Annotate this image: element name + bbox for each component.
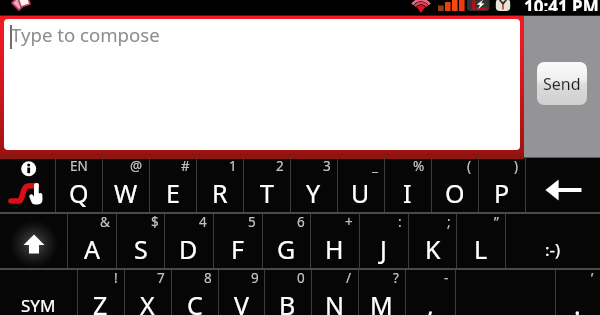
staticText: !	[114, 269, 118, 287]
staticText: B	[279, 288, 296, 315]
staticText: V	[234, 288, 250, 315]
button[interactable]: Backspace	[525, 157, 600, 213]
staticText: R	[212, 176, 228, 210]
staticText: X	[140, 288, 155, 315]
staticText: 5	[248, 213, 256, 231]
button[interactable]: :-)	[505, 213, 600, 269]
staticText: :	[398, 213, 402, 231]
staticText: P	[494, 176, 510, 210]
button[interactable]: B	[264, 269, 311, 315]
staticText: Send	[543, 73, 581, 95]
button[interactable]: Q	[55, 157, 102, 213]
button[interactable]: M	[358, 269, 405, 315]
staticText: 6	[297, 213, 305, 231]
staticText: 3	[323, 157, 331, 175]
staticText: %	[413, 157, 425, 175]
staticText: Z	[93, 288, 108, 315]
staticText: $	[151, 213, 159, 231]
button[interactable]: A	[67, 213, 116, 269]
button[interactable]: .	[555, 269, 600, 315]
staticText: Y	[306, 176, 321, 210]
staticText: .	[574, 288, 581, 315]
staticText: 10:41 PM	[524, 0, 599, 11]
other: Swype options	[0, 157, 55, 213]
staticText: ”	[494, 213, 499, 231]
staticText: 7	[157, 269, 165, 287]
button[interactable]: R	[196, 157, 243, 213]
staticText: W	[114, 176, 138, 210]
other: Shift	[0, 213, 67, 269]
other: Backspace	[525, 157, 600, 213]
button[interactable]: W	[102, 157, 149, 213]
staticText: O	[445, 176, 465, 210]
staticText: ,	[427, 288, 434, 315]
other: Notification	[10, 0, 32, 9]
staticText: 2	[276, 157, 284, 175]
staticText: (	[467, 157, 472, 175]
staticText: EN	[70, 157, 88, 175]
staticText: U	[351, 176, 370, 210]
staticText: G	[277, 232, 296, 266]
button[interactable]: I	[384, 157, 431, 213]
button[interactable]: H	[310, 213, 359, 269]
staticText: @	[130, 157, 143, 175]
staticText: 8	[204, 269, 212, 287]
button[interactable]: Y	[290, 157, 337, 213]
staticText: ;	[447, 213, 451, 231]
button[interactable]: S	[116, 213, 165, 269]
staticText: Q	[69, 176, 89, 210]
button[interactable]: SYM	[0, 269, 77, 315]
staticText: 9	[251, 269, 259, 287]
button[interactable]: J	[359, 213, 408, 269]
button[interactable]: Z	[77, 269, 124, 315]
button[interactable]: V	[218, 269, 265, 315]
staticText: A	[84, 232, 100, 266]
staticText: J	[380, 232, 387, 266]
button[interactable]: C	[171, 269, 218, 315]
button[interactable]: X	[124, 269, 171, 315]
staticText: 4	[199, 213, 207, 231]
staticText: M	[370, 288, 393, 315]
button[interactable]: D	[164, 213, 213, 269]
button[interactable]: ,	[405, 269, 455, 315]
button[interactable]: Type to compose	[0, 16, 524, 157]
staticText: C	[187, 288, 203, 315]
button[interactable]: F	[213, 213, 262, 269]
staticText: K	[425, 232, 441, 266]
button[interactable]: L	[456, 213, 505, 269]
staticText: L	[474, 232, 488, 266]
staticText: F	[231, 232, 244, 266]
staticText: T	[260, 176, 274, 210]
button[interactable]: K	[408, 213, 457, 269]
button[interactable]: O	[431, 157, 478, 213]
staticText: ?	[393, 269, 399, 287]
staticText: S	[134, 232, 148, 266]
button[interactable]: T	[243, 157, 290, 213]
staticText: D	[179, 232, 198, 266]
staticText: +	[345, 213, 353, 231]
staticText: SYM	[21, 294, 56, 315]
staticText: Type to compose	[11, 22, 160, 47]
staticText: /	[346, 269, 352, 287]
button[interactable]	[455, 269, 555, 315]
staticText: I	[403, 176, 412, 210]
staticText: )	[514, 157, 519, 175]
staticText: #	[181, 157, 190, 175]
button[interactable]: Send	[537, 62, 587, 105]
staticText: N	[325, 288, 345, 315]
button[interactable]: N	[311, 269, 358, 315]
staticText: ’	[591, 269, 594, 287]
button[interactable]: P	[478, 157, 525, 213]
staticText: _	[372, 157, 378, 175]
button[interactable]: E	[149, 157, 196, 213]
button[interactable]: Swype options	[0, 157, 55, 213]
staticText: E	[166, 176, 180, 210]
staticText: -	[444, 269, 449, 287]
staticText: 1	[229, 157, 237, 175]
staticText: &	[100, 213, 110, 231]
button[interactable]: G	[262, 213, 311, 269]
staticText: H	[325, 232, 344, 266]
button[interactable]: Shift	[0, 213, 67, 269]
button[interactable]: U	[337, 157, 384, 213]
staticText: 0	[297, 269, 305, 287]
